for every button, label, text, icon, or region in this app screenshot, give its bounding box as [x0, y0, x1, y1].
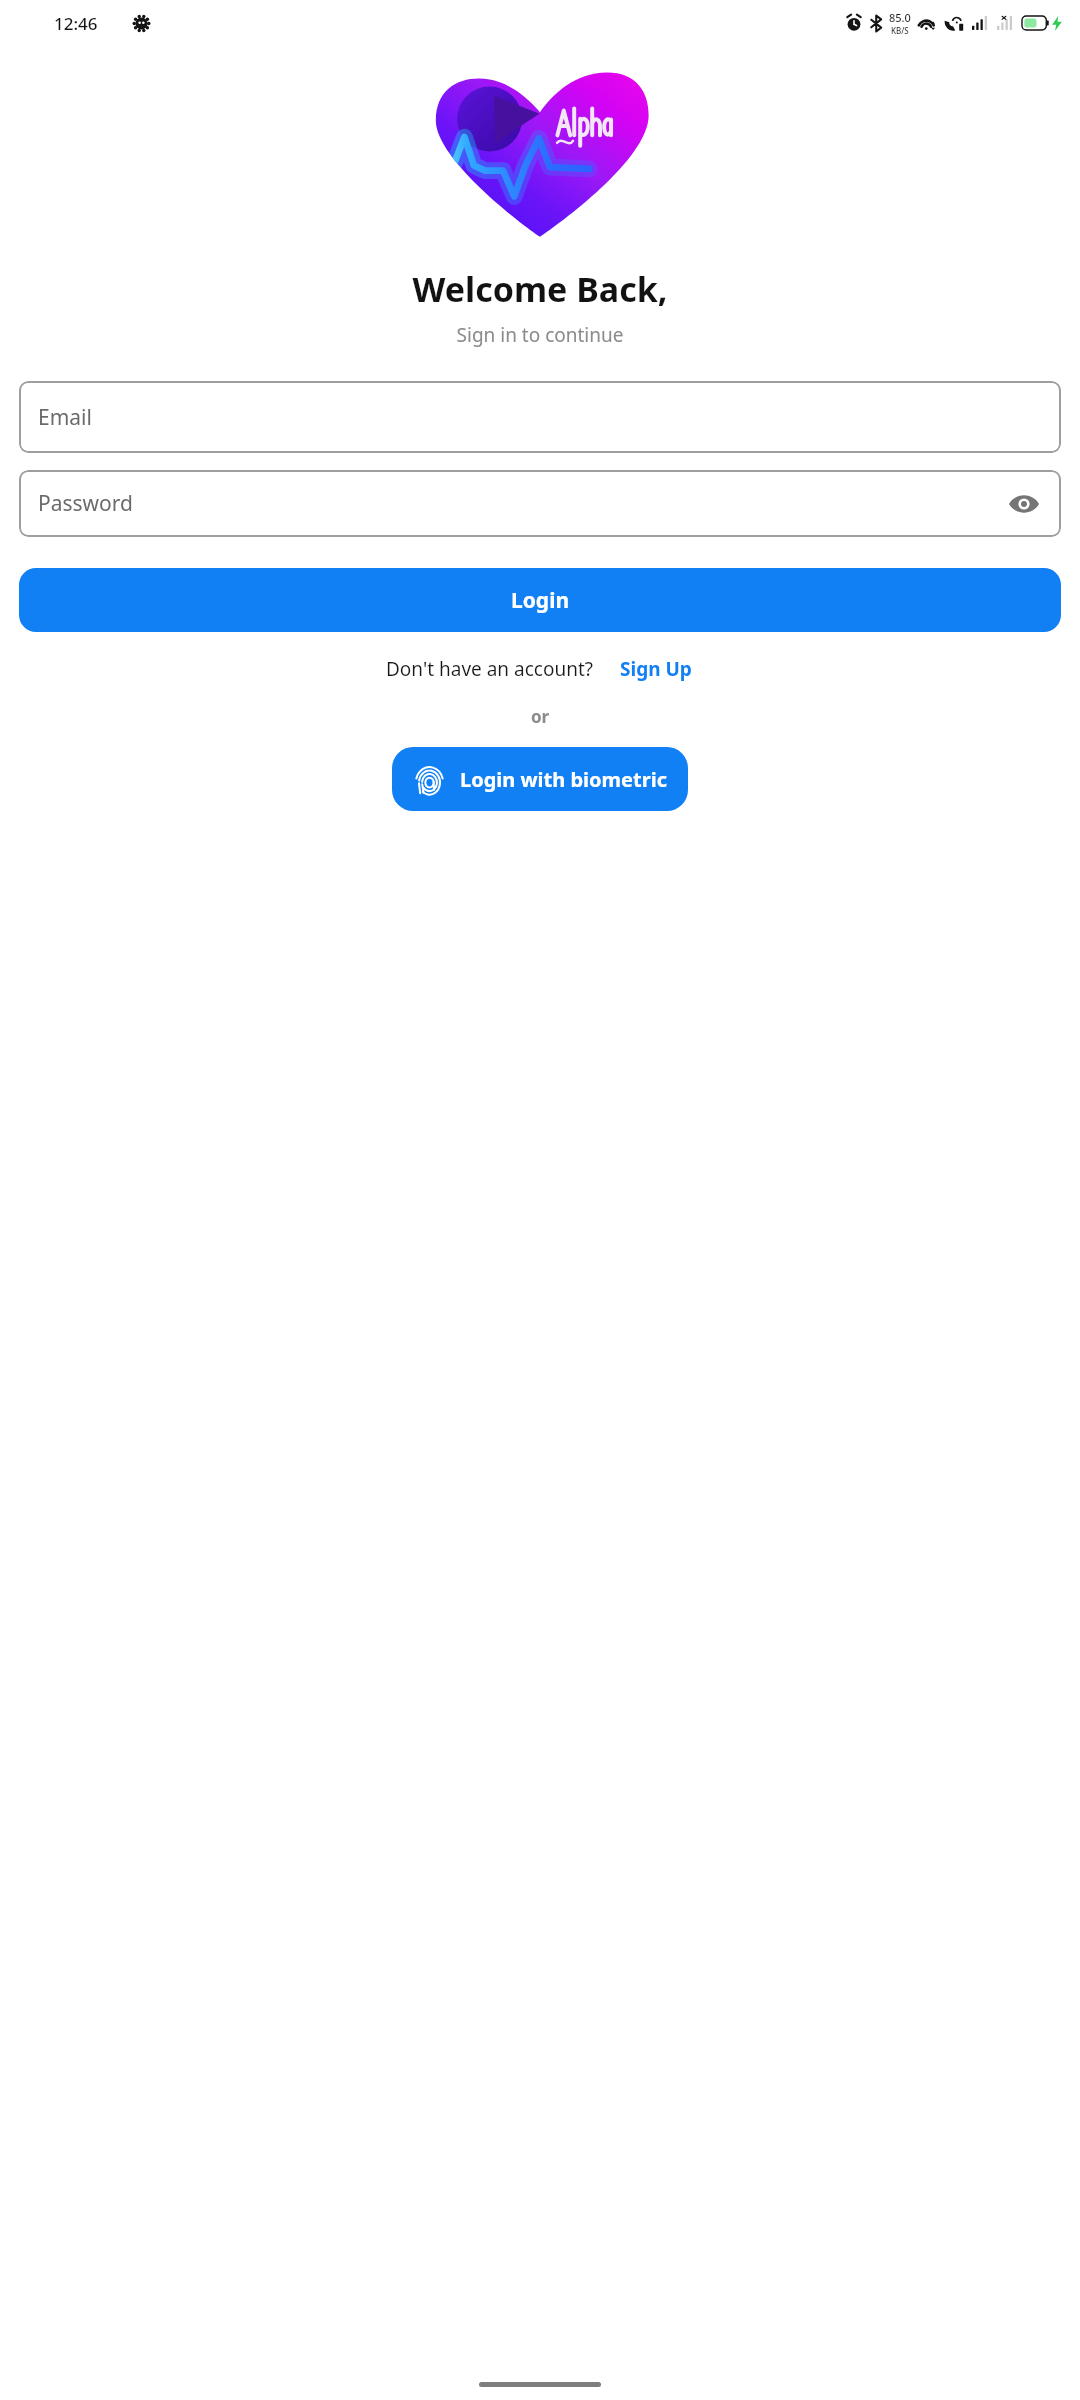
staticText: or — [0, 705, 1080, 728]
staticText: Login with biometric — [460, 766, 667, 793]
button[interactable]: Email — [19, 381, 1061, 453]
button[interactable]: Password — [19, 470, 1061, 537]
staticText: 85.0 — [889, 10, 911, 25]
button[interactable]: Login with biometric — [392, 747, 688, 811]
staticText: KB/S — [891, 25, 909, 36]
button[interactable]: Sign Up — [618, 654, 694, 684]
staticText: Sign in to continue — [0, 322, 1080, 348]
staticText: Login — [511, 586, 570, 615]
button[interactable]: Login — [19, 568, 1061, 632]
button[interactable]: Show password — [1006, 486, 1042, 522]
staticText: Welcome Back, — [0, 266, 1080, 312]
staticText: Sign Up — [620, 656, 692, 682]
staticText: Password — [38, 489, 133, 518]
staticText: Don't have an account? — [386, 656, 594, 682]
staticText: 12:46 — [54, 12, 98, 35]
staticText: Email — [38, 403, 92, 432]
